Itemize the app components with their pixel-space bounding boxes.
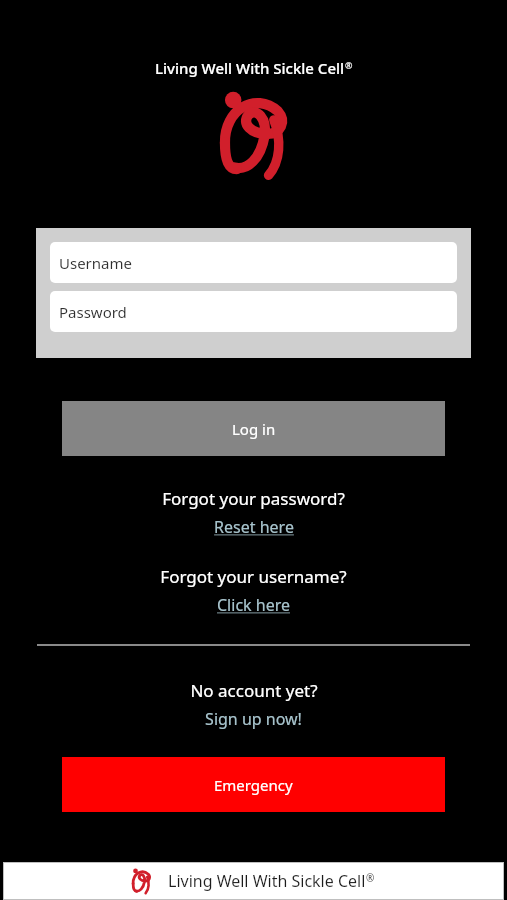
button[interactable]: Sign up now! xyxy=(199,706,308,732)
staticText: No account yet? xyxy=(190,679,318,702)
staticText: Forgot your username? xyxy=(160,565,347,588)
staticText: Reset here xyxy=(214,516,294,538)
button[interactable]: Emergency xyxy=(62,757,445,812)
button[interactable]: Living Well With Sickle Cell xyxy=(4,863,503,899)
staticText: Password xyxy=(59,302,127,322)
staticText: Forgot your password? xyxy=(162,487,345,510)
staticText: Living Well With Sickle Cell xyxy=(155,58,345,78)
staticText: ® xyxy=(366,871,375,885)
button[interactable]: Click here xyxy=(211,592,296,618)
staticText: Click here xyxy=(217,594,290,616)
staticText: Emergency xyxy=(214,775,293,795)
button[interactable]: Username xyxy=(50,242,457,283)
button[interactable]: Reset here xyxy=(208,514,300,540)
staticText: Log in xyxy=(232,419,276,439)
staticText: Sign up now! xyxy=(205,708,302,730)
staticText: ® xyxy=(345,59,353,71)
staticText: Living Well With Sickle Cell xyxy=(168,870,366,892)
button[interactable]: Log in xyxy=(62,401,445,456)
staticText: Username xyxy=(59,253,132,273)
button[interactable]: Password xyxy=(50,291,457,332)
